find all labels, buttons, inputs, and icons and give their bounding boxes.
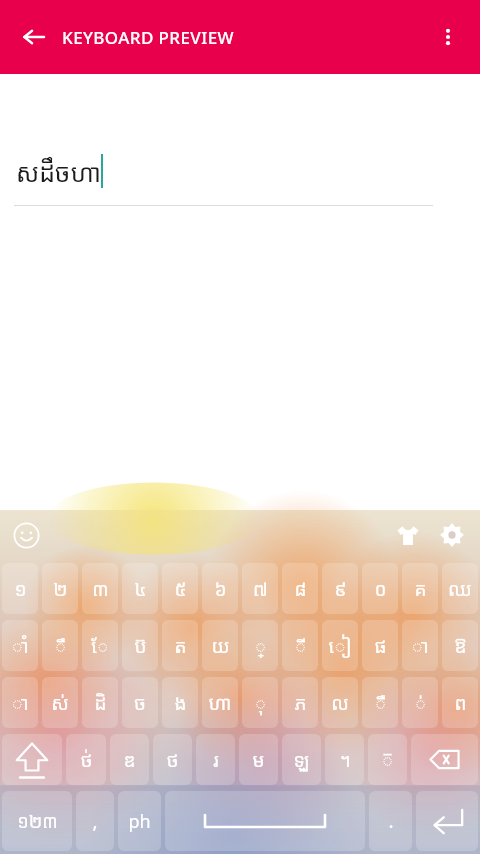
button[interactable]: ហា — [202, 677, 238, 728]
button[interactable]: ដិ — [82, 677, 118, 728]
staticText: ហា — [208, 690, 232, 716]
button[interactable]: More options — [424, 13, 472, 61]
staticText: ាំ — [11, 633, 29, 659]
staticText: ុ — [254, 690, 267, 716]
button[interactable]: ៀ — [322, 620, 358, 671]
button[interactable]: Shift — [2, 734, 62, 785]
button[interactable]: ៑ — [368, 734, 407, 785]
staticText: ដិ — [94, 690, 107, 716]
button[interactable]: ២ — [42, 563, 78, 614]
button[interactable]: ឡ្ — [282, 734, 321, 785]
button[interactable]: ច — [122, 677, 158, 728]
button[interactable]: Theme — [386, 513, 430, 557]
button[interactable]: ្ — [242, 620, 278, 671]
button[interactable]: ៧ — [242, 563, 278, 614]
button[interactable]: ភ — [282, 677, 318, 728]
staticText: ច — [134, 690, 146, 716]
staticText: KEYBOARD PREVIEW — [62, 26, 234, 49]
button[interactable]: គ — [402, 563, 438, 614]
button[interactable]: Enter — [416, 791, 478, 851]
staticText: ់ — [414, 690, 427, 716]
button[interactable]: ៦ — [202, 563, 238, 614]
button[interactable]: ៥ — [162, 563, 198, 614]
staticText: ១២៣ — [17, 809, 58, 834]
staticText: ២ — [53, 576, 68, 602]
button[interactable]: Backspace — [411, 734, 478, 785]
staticText: យ — [211, 633, 230, 659]
button[interactable]: ១២៣ — [2, 791, 72, 851]
button[interactable]: ឱ — [442, 620, 478, 671]
staticText: ្ — [254, 633, 267, 659]
button[interactable]: ា — [2, 677, 38, 728]
button[interactable]: Settings — [430, 513, 474, 557]
staticText: ៨ — [294, 576, 307, 602]
staticText: ប៊ — [134, 633, 147, 659]
button[interactable]: ឈ — [442, 563, 478, 614]
staticText: ឹ — [54, 633, 67, 659]
button[interactable]: ី — [282, 620, 318, 671]
staticText: ម — [252, 747, 265, 773]
staticText: ស់ — [51, 690, 69, 716]
staticText: ៑ — [381, 747, 394, 773]
staticText: ។ — [339, 747, 351, 773]
staticText: រ — [213, 747, 219, 773]
staticText: ឺ — [374, 690, 387, 716]
button[interactable]: រ — [196, 734, 235, 785]
button[interactable]: ់ — [402, 677, 438, 728]
button[interactable]: ត — [162, 620, 198, 671]
button[interactable]: ៣ — [82, 563, 118, 614]
staticText: ែ — [91, 633, 109, 659]
button[interactable]: ថ់ — [66, 734, 106, 785]
staticText: ph — [128, 809, 151, 834]
staticText: ៀ — [328, 633, 352, 659]
button[interactable]: ថ — [153, 734, 192, 785]
staticText: ង — [174, 690, 187, 716]
button[interactable]: ាំ — [2, 620, 38, 671]
button[interactable]: ង — [162, 677, 198, 728]
button[interactable]: . — [369, 791, 412, 851]
button[interactable]: ា — [402, 620, 438, 671]
button[interactable]: ឌ — [110, 734, 149, 785]
button[interactable]: , — [76, 791, 114, 851]
staticText: ា — [11, 690, 29, 716]
button[interactable]: Emoji — [4, 513, 48, 557]
button[interactable]: Back — [10, 13, 58, 61]
button[interactable]: យ — [202, 620, 238, 671]
staticText: ១ — [14, 576, 27, 602]
button[interactable]: ៩ — [322, 563, 358, 614]
button[interactable]: ស់ — [42, 677, 78, 728]
staticText: ល — [331, 690, 349, 716]
button[interactable]: ព — [442, 677, 478, 728]
button[interactable]: ៨ — [282, 563, 318, 614]
staticText: ៦ — [214, 576, 227, 602]
button[interactable]: ៤ — [122, 563, 158, 614]
button[interactable]: ០ — [362, 563, 398, 614]
button[interactable]: ឺ — [362, 677, 398, 728]
button[interactable]: ម — [239, 734, 278, 785]
button[interactable]: ph — [118, 791, 161, 851]
button[interactable]: ផ — [362, 620, 398, 671]
button[interactable]: ប៊ — [122, 620, 158, 671]
staticText: ឌ — [123, 747, 136, 773]
staticText: ថ — [166, 747, 179, 773]
staticText: ឡ្ — [293, 747, 310, 773]
staticText: ព — [454, 690, 467, 716]
button[interactable]: ឹ — [42, 620, 78, 671]
staticText: ី — [294, 633, 307, 659]
button[interactable]: ល — [322, 677, 358, 728]
button[interactable]: ១ — [2, 563, 38, 614]
staticText: ៣ — [92, 576, 109, 602]
staticText: ៥ — [174, 576, 187, 602]
staticText: សដឹចហា — [16, 155, 101, 189]
button[interactable]: ុ — [242, 677, 278, 728]
staticText: ថ់ — [80, 747, 93, 773]
staticText: ផ — [374, 633, 387, 659]
staticText: ភ — [294, 690, 307, 716]
button[interactable]: ។ — [325, 734, 364, 785]
button[interactable]: Space — [165, 791, 365, 851]
staticText: ៤ — [134, 576, 147, 602]
button[interactable]: ែ — [82, 620, 118, 671]
staticText: ឈ — [448, 576, 472, 602]
staticText: ា — [411, 633, 429, 659]
staticText: គ — [414, 576, 427, 602]
